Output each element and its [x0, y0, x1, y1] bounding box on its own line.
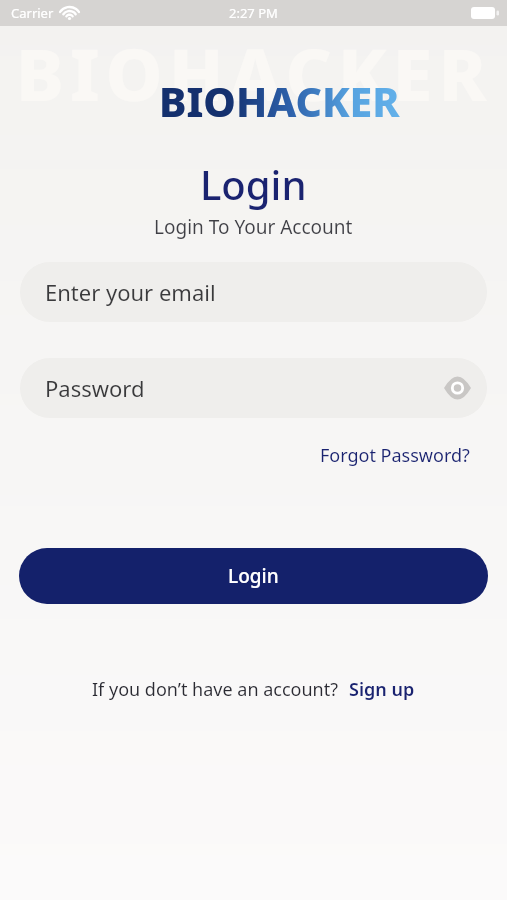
staticText: BIOHACKER	[159, 73, 400, 129]
staticText: Password	[45, 373, 145, 403]
staticText: Login	[200, 157, 307, 211]
staticText: Login	[228, 563, 279, 589]
staticText: Login To Your Account	[154, 214, 353, 240]
button[interactable]: Login	[19, 548, 488, 604]
button[interactable]: Enter your email	[20, 262, 487, 322]
staticText: If you don’t have an account?	[92, 677, 339, 702]
staticText: 2:27 PM	[229, 4, 278, 22]
button[interactable]: Forgot Password?	[320, 443, 470, 468]
button[interactable]: Password	[20, 358, 487, 418]
staticText: Carrier	[11, 4, 54, 22]
staticText: Enter your email	[45, 277, 216, 307]
staticText: BIOHACKER	[0, 24, 507, 122]
button[interactable]: Sign up	[349, 677, 415, 702]
